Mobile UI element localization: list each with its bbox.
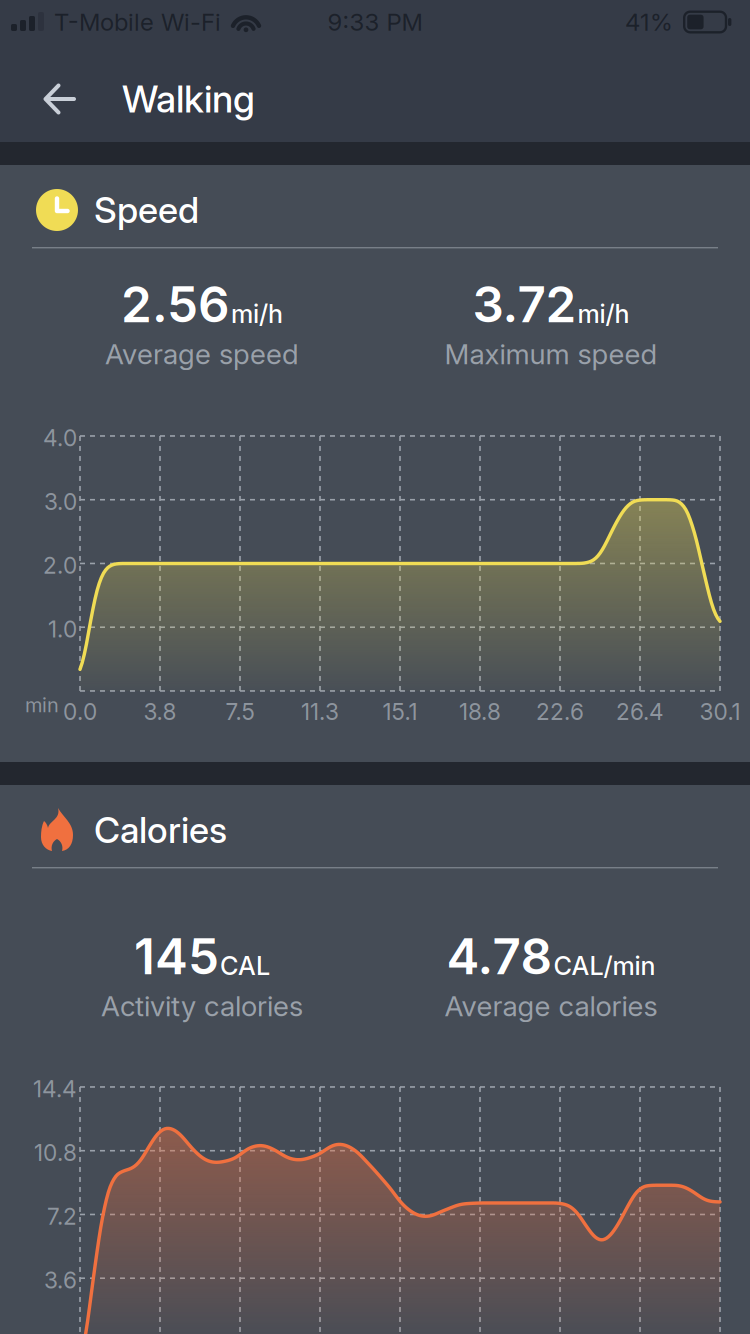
staticText: 2.0 — [43, 552, 77, 579]
staticText: 3.6 — [44, 1266, 77, 1294]
staticText: 3.8 — [143, 698, 176, 725]
staticText: 2.56 — [121, 274, 230, 334]
staticText: Walking — [122, 76, 255, 122]
staticText: 41% — [625, 7, 673, 36]
staticText: min — [25, 693, 59, 717]
staticText: mi/h — [231, 298, 283, 329]
button[interactable]: Back — [29, 68, 91, 130]
staticText: 15.1 — [382, 698, 417, 725]
staticText: Speed — [94, 188, 199, 232]
staticText: 4.0 — [43, 424, 77, 452]
staticText: Average speed — [105, 337, 299, 371]
staticText: CAL — [220, 950, 270, 981]
staticText: 1.0 — [48, 615, 77, 643]
staticText: 10.8 — [34, 1139, 77, 1166]
staticText: CAL/min — [553, 950, 655, 981]
staticText: 7.2 — [47, 1203, 77, 1230]
staticText: 18.8 — [459, 698, 501, 725]
staticText: mi/h — [577, 298, 629, 329]
staticText: 0.0 — [63, 698, 97, 725]
staticText: 9:33 PM — [327, 7, 422, 36]
staticText: 4.78 — [446, 926, 552, 986]
staticText: 30.1 — [699, 698, 740, 725]
staticText: 11.3 — [301, 698, 339, 725]
staticText: 26.4 — [616, 698, 664, 725]
staticText: Calories — [94, 808, 227, 852]
staticText: 22.6 — [536, 698, 584, 725]
staticText: Activity calories — [101, 989, 303, 1023]
staticText: 3.0 — [44, 488, 77, 515]
staticText: Average calories — [444, 989, 657, 1023]
staticText: Maximum speed — [444, 337, 657, 371]
staticText: 3.72 — [472, 274, 576, 334]
staticText: 7.5 — [225, 698, 254, 725]
staticText: T-Mobile Wi-Fi — [54, 7, 221, 36]
staticText: 145 — [134, 926, 219, 986]
staticText: 14.4 — [33, 1075, 77, 1103]
